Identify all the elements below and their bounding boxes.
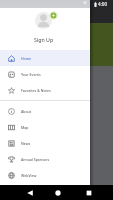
staticText: WebView — [21, 173, 37, 178]
staticText: Annual Sponsors — [21, 157, 50, 162]
button[interactable]: About — [0, 103, 90, 119]
button[interactable]: Back — [23, 186, 37, 200]
staticText: Map — [21, 125, 29, 130]
button[interactable]: Favorites & Notes — [0, 82, 90, 98]
staticText: 4:00 — [98, 1, 108, 7]
staticText: Your Events — [21, 72, 41, 77]
button[interactable]: News — [0, 135, 90, 151]
staticText: Home — [21, 56, 32, 61]
staticText: News — [21, 141, 31, 146]
button[interactable]: Your Events — [0, 66, 90, 82]
button[interactable]: Home — [51, 186, 65, 200]
button[interactable]: Map — [0, 119, 90, 135]
staticText: Favorites & Notes — [21, 88, 51, 93]
staticText: About — [21, 109, 32, 114]
button[interactable]: Recent apps — [82, 186, 96, 200]
button[interactable]: WebView — [0, 167, 90, 183]
button[interactable]: Home — [0, 50, 90, 66]
button[interactable]: Annual Sponsors — [0, 151, 90, 167]
staticText: Sign Up — [34, 36, 54, 43]
